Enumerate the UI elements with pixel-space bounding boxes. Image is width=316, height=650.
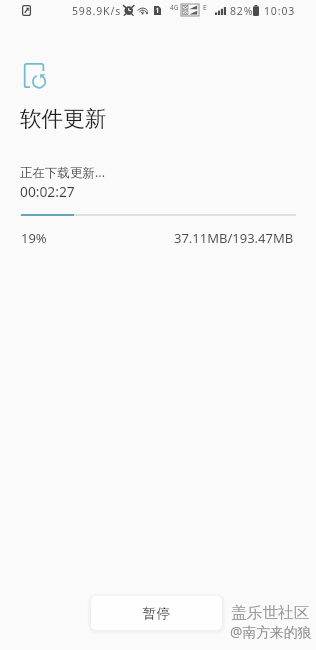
staticText: 598.9K/s [72, 4, 122, 18]
staticText: 82% [230, 4, 254, 18]
staticText: 4G [170, 3, 179, 12]
staticText: 00:02:27 [20, 182, 75, 201]
staticText: 正在下载更新... [20, 164, 106, 181]
staticText: 10:03 [264, 4, 296, 18]
staticText: 盖乐世社区 [231, 603, 310, 623]
staticText: 暂停 [143, 605, 170, 622]
staticText: E [203, 3, 207, 12]
staticText: 37.11MB/193.47MB [174, 229, 294, 247]
button[interactable]: 暂停 [91, 596, 222, 630]
staticText: @南方来的狼 [230, 622, 312, 641]
staticText: 19% [21, 229, 47, 247]
staticText: 软件更新 [20, 105, 107, 132]
